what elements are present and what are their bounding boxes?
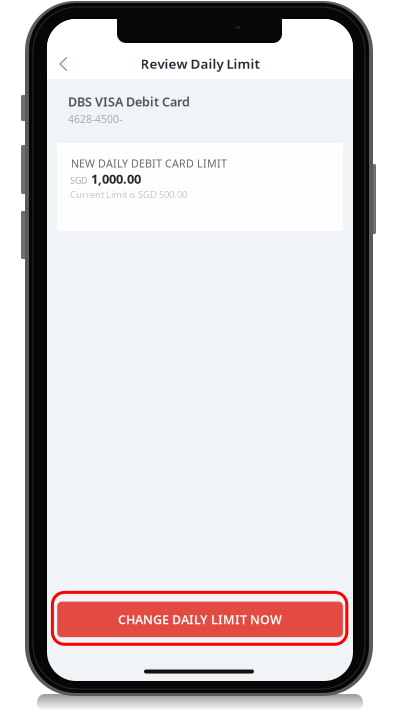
staticText: SGD [70, 174, 87, 186]
button[interactable]: Back [49, 49, 77, 79]
staticText: 1,000.00 [91, 170, 141, 187]
staticText: NEW DAILY DEBIT CARD LIMIT [71, 156, 227, 170]
staticText: Review Daily Limit [140, 54, 259, 73]
staticText: Current Limit is SGD 500.00 [70, 188, 187, 201]
staticText: 4628-4500- [68, 112, 122, 126]
staticText: CHANGE DAILY LIMIT NOW [118, 611, 282, 628]
staticText: DBS VISA Debit Card [68, 93, 190, 110]
button[interactable]: CHANGE DAILY LIMIT NOW [57, 602, 343, 637]
